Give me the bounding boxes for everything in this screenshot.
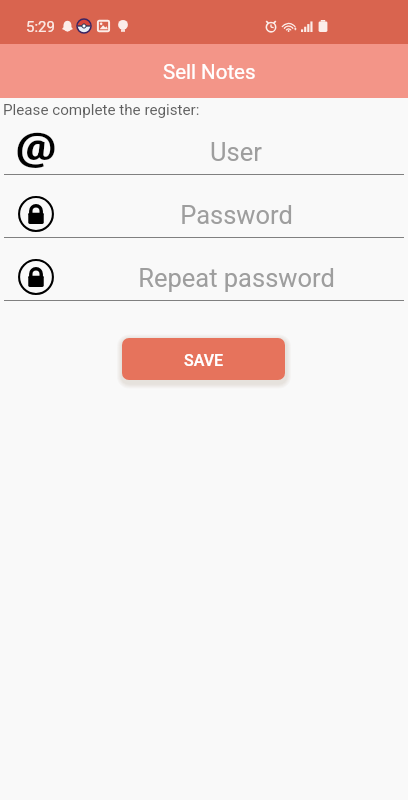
button[interactable]: SAVE bbox=[122, 338, 285, 380]
other: Email bbox=[8, 118, 64, 174]
staticText: Sell Notes bbox=[163, 60, 256, 84]
staticText: Repeat password bbox=[138, 263, 335, 293]
button[interactable]: Password bbox=[18, 196, 54, 232]
other: Password bbox=[18, 259, 54, 295]
staticText: @ bbox=[16, 124, 57, 169]
staticText: Please complete the register: bbox=[3, 101, 200, 119]
staticText: SAVE bbox=[184, 351, 224, 370]
button[interactable]: Repeat password bbox=[68, 262, 404, 294]
button[interactable]: User bbox=[68, 136, 404, 168]
button[interactable]: Password bbox=[18, 259, 54, 295]
staticText: User bbox=[210, 137, 262, 167]
button[interactable]: Password bbox=[68, 199, 404, 231]
staticText: 5:29 bbox=[26, 18, 55, 36]
staticText: Password bbox=[180, 200, 293, 230]
button[interactable]: Email bbox=[8, 118, 64, 174]
other: Password bbox=[18, 196, 54, 232]
